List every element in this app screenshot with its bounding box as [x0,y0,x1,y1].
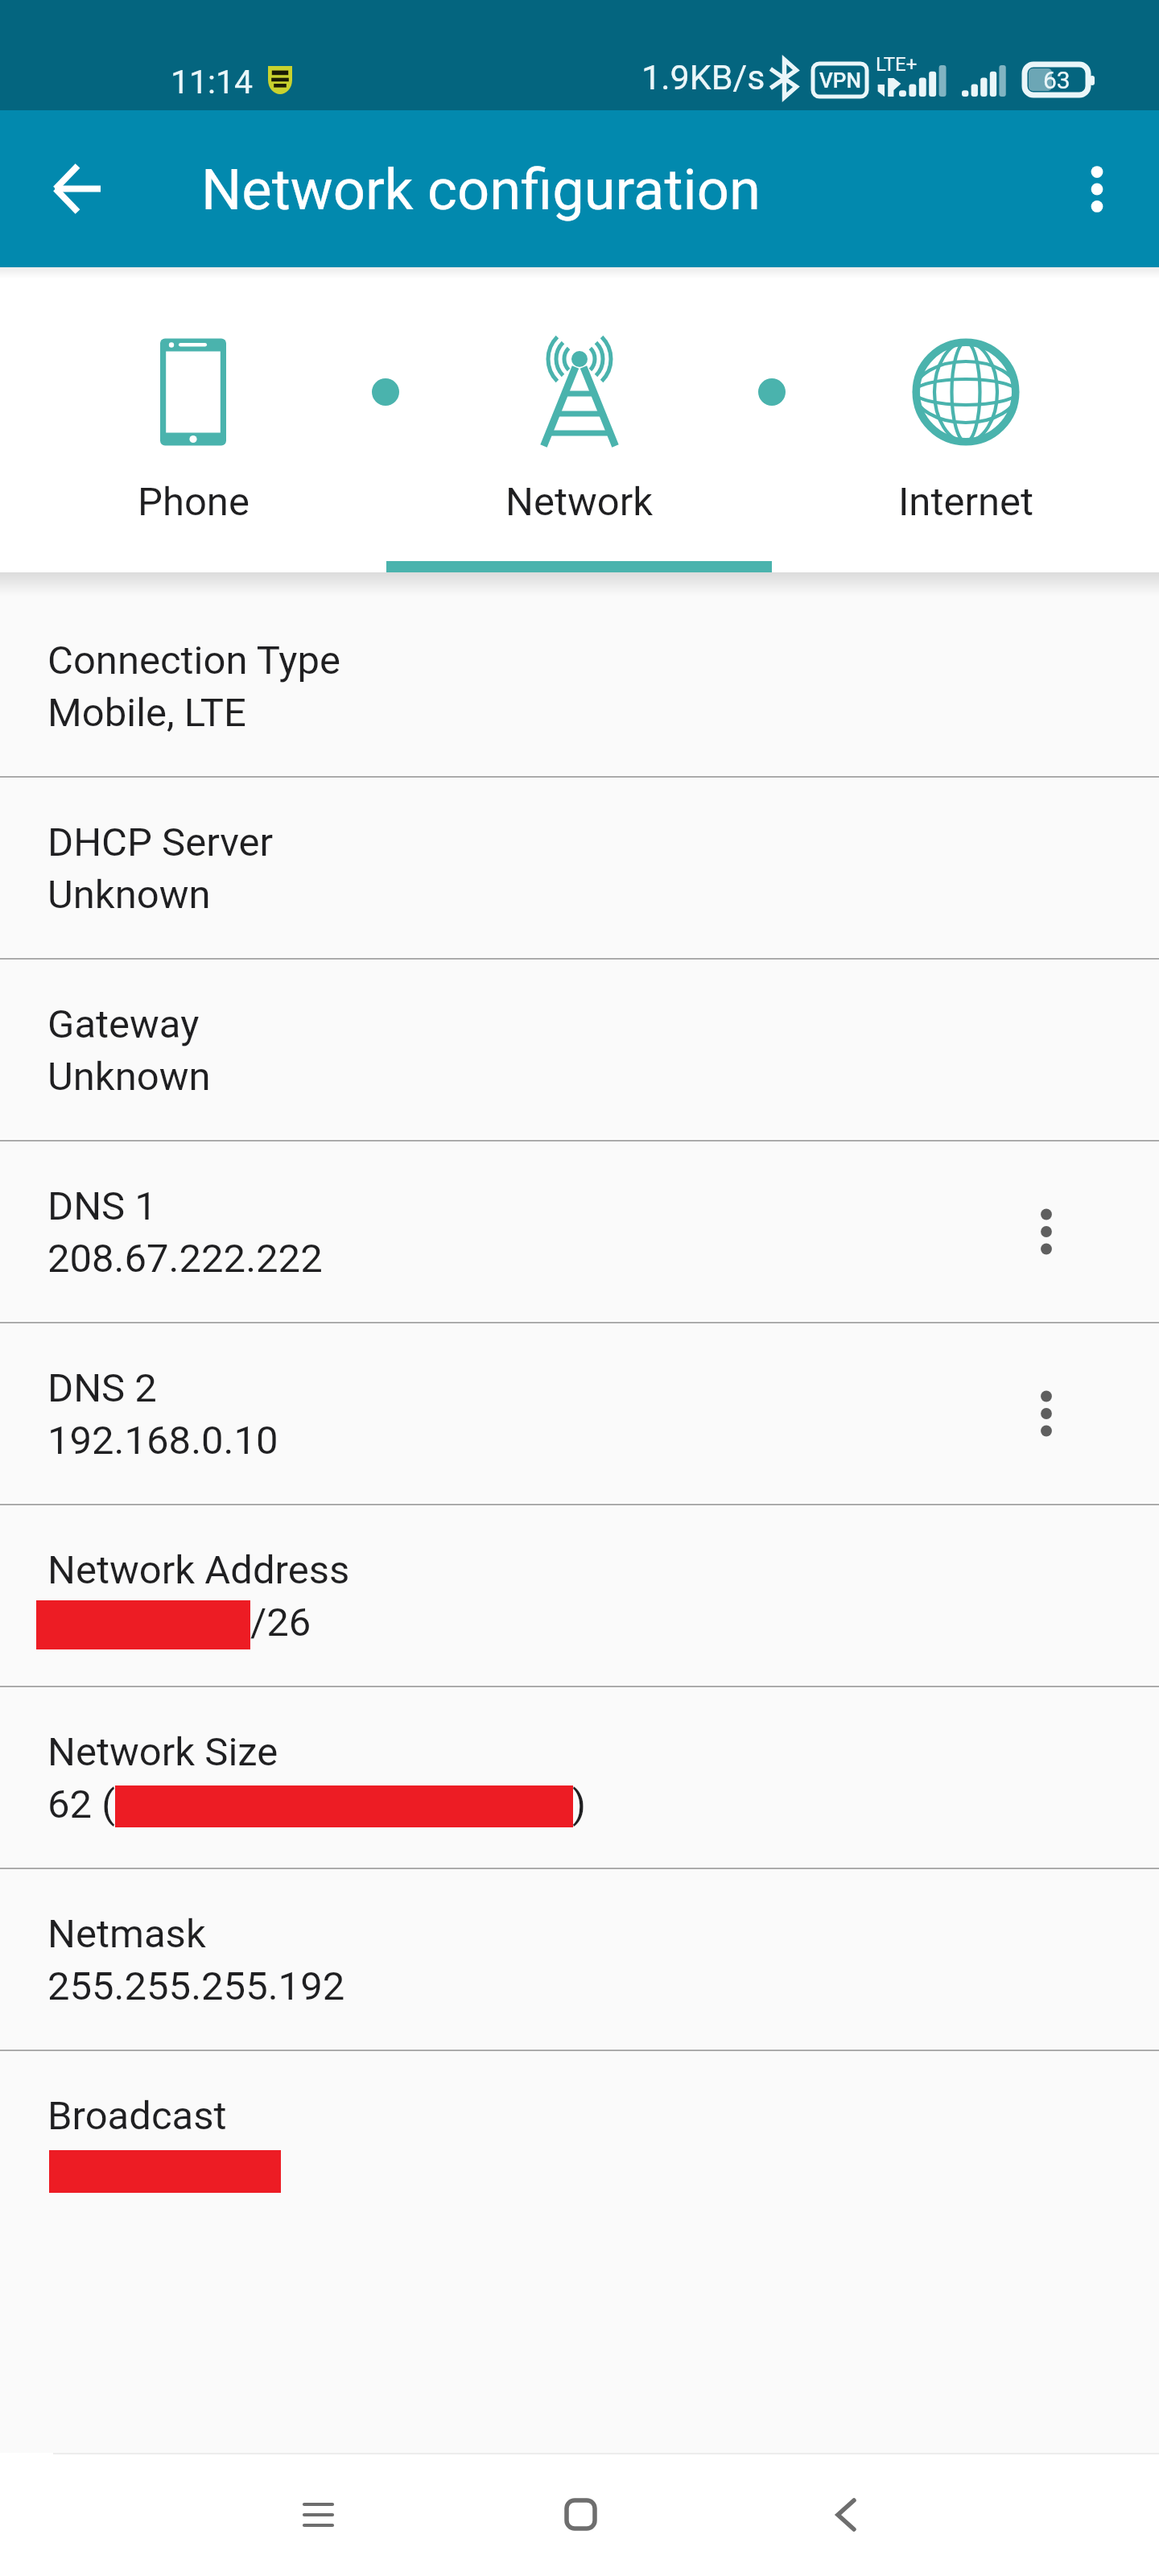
button[interactable]: DHCP Server [0,778,1159,957]
staticText: Internet [898,479,1034,525]
staticText: Network Size [47,1729,278,1775]
button[interactable]: Network Size [0,1687,1159,1867]
staticText: 1.9KB/s [641,57,765,97]
staticText: Unknown [47,872,211,918]
staticText: VPN [819,68,861,93]
staticText: Netmask [47,1911,206,1957]
staticText: /26 [250,1600,311,1645]
staticText: ) [572,1781,587,1827]
button[interactable]: More options [1034,110,1159,267]
staticText: Network Address [47,1547,350,1593]
staticText: Gateway [47,1001,200,1047]
button[interactable]: DNS 1 [0,1141,1159,1321]
staticText: Network configuration [201,157,761,224]
button[interactable]: DNS 2 [0,1323,1159,1503]
staticText: Mobile, LTE [47,690,246,736]
staticText: LTE+ [876,53,918,76]
staticText: 192.168.0.10 [47,1418,278,1463]
button[interactable]: Gateway [0,960,1159,1139]
button[interactable]: Connection Type [0,596,1159,775]
button[interactable]: Network Address [0,1505,1159,1685]
button[interactable]: Broadcast [0,2051,1159,2231]
staticText: 11:14 [171,63,254,101]
button[interactable]: Home [524,2453,637,2576]
button[interactable]: Netmask [0,1869,1159,2049]
staticText: 63 [1043,66,1070,94]
staticText: Connection Type [47,638,340,683]
staticText: DNS 1 [47,1183,157,1229]
staticText: Network [505,479,654,525]
button[interactable]: Back [789,2453,901,2576]
button[interactable]: Phone [0,267,386,572]
button[interactable]: Internet [773,267,1159,572]
staticText: 62 ( [47,1781,116,1827]
staticText: 208.67.222.222 [47,1236,323,1282]
staticText: DNS 2 [47,1365,157,1411]
staticText: Phone [138,479,250,525]
button[interactable]: More options [982,1323,1111,1503]
button[interactable]: Recent apps [262,2453,374,2576]
button[interactable]: Network [386,267,773,572]
staticText: Unknown [47,1054,211,1100]
staticText: 255.255.255.192 [47,1963,345,2009]
button[interactable]: More options [982,1141,1111,1321]
staticText: DHCP Server [47,819,274,865]
staticText: Broadcast [47,2093,227,2139]
button[interactable]: Navigate up [13,110,142,267]
